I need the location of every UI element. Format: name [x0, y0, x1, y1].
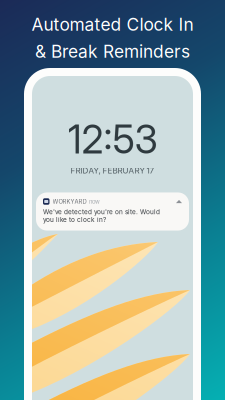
staticText: WORKYARD — [52, 198, 86, 205]
staticText: & Break Reminders — [35, 41, 190, 62]
staticText: 12:53 — [67, 116, 157, 163]
staticText: now — [89, 198, 100, 205]
staticText: We've detected you're on site. Would you… — [43, 208, 160, 224]
staticText: FRIDAY, FEBRUARY 17 — [70, 166, 154, 175]
button[interactable]: WORKYARD — [36, 192, 189, 231]
staticText: Automated Clock In — [31, 14, 193, 35]
